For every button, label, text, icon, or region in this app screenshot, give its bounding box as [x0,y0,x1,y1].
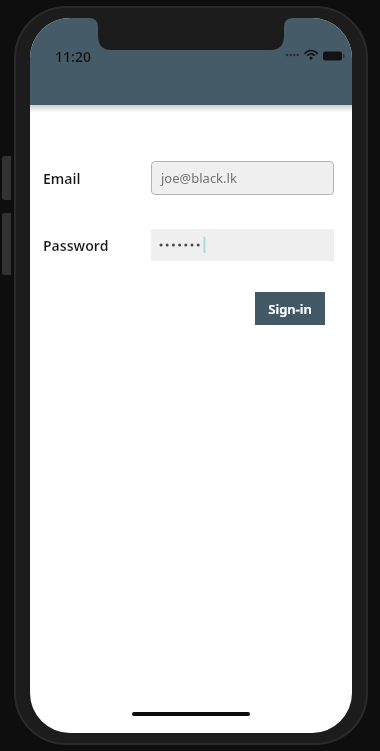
button[interactable]: Sign-in [255,292,325,325]
button[interactable]: joe@black.lk [151,161,334,195]
other: Signal, Wi-Fi and battery status [285,47,347,63]
staticText: 11:20 [55,47,91,66]
staticText: joe@black.lk [161,169,237,187]
staticText: Sign-in [268,300,312,318]
button[interactable]: Password [151,229,334,261]
staticText: Email [43,169,81,188]
staticText: Password [43,236,109,255]
